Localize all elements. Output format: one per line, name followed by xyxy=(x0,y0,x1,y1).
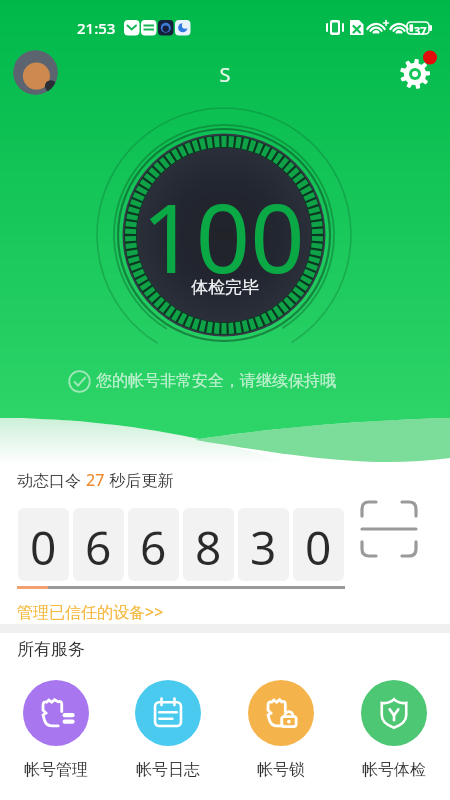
staticText: 0 xyxy=(30,516,57,579)
staticText: 3 xyxy=(250,516,277,579)
staticText: 0 xyxy=(305,516,332,579)
button[interactable]: Settings xyxy=(396,52,438,94)
staticText: S xyxy=(0,61,450,88)
button[interactable]: Profile xyxy=(13,50,58,95)
staticText: 管理已信任的设备>> xyxy=(17,601,164,623)
staticText: 6 xyxy=(85,516,112,579)
staticText: 37 xyxy=(414,23,427,38)
staticText: 帐号体检 xyxy=(362,760,426,780)
button[interactable]: 帐号锁 xyxy=(224,680,337,780)
staticText: 帐号管理 xyxy=(24,760,88,780)
button[interactable]: 帐号日志 xyxy=(112,680,224,780)
staticText: 27 xyxy=(86,469,105,491)
staticText: 动态口令 xyxy=(17,469,86,491)
button[interactable]: 帐号管理 xyxy=(0,680,112,780)
staticText: 帐号日志 xyxy=(136,760,200,780)
staticText: 您的帐号非常安全，请继续保持哦 xyxy=(96,371,336,391)
button[interactable]: Scan QR code xyxy=(358,498,420,560)
staticText: 所有服务 xyxy=(17,639,85,660)
staticText: 6 xyxy=(140,516,167,579)
button[interactable]: 管理已信任的设备>> xyxy=(0,596,450,624)
staticText: 秒后更新 xyxy=(105,469,174,491)
staticText: 8 xyxy=(195,516,222,579)
staticText: 帐号锁 xyxy=(257,760,305,780)
staticText: 体检完毕 xyxy=(0,277,450,298)
button[interactable]: 帐号体检 xyxy=(337,680,450,780)
staticText: 100 xyxy=(0,171,448,300)
staticText: 21:53 xyxy=(77,18,116,38)
